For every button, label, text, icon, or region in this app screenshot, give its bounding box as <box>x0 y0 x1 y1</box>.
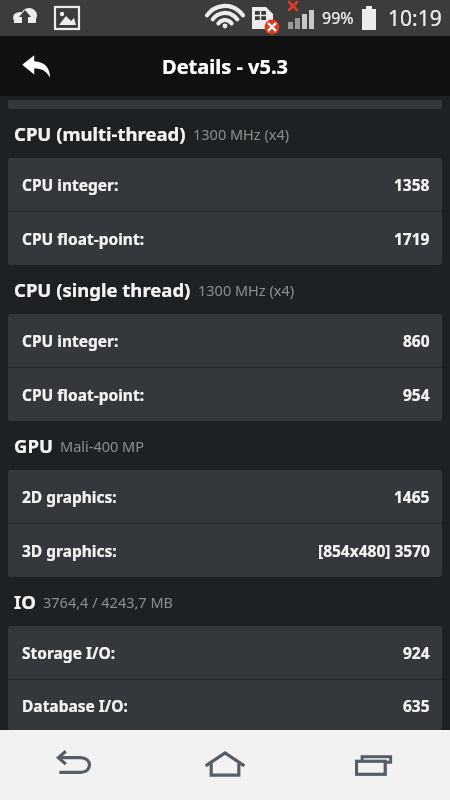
staticText: Storage I/O: <box>22 642 116 663</box>
button[interactable]: 3D graphics: <box>8 524 442 577</box>
staticText: 860 <box>403 330 430 351</box>
staticText: 3764,4 / 4243,7 MB <box>43 592 173 612</box>
button[interactable]: Database I/O: <box>8 680 442 730</box>
staticText: Details - v5.3 <box>162 53 288 80</box>
staticText: 10:19 <box>388 4 442 33</box>
staticText: 954 <box>403 384 430 405</box>
staticText: 1465 <box>394 486 430 507</box>
staticText: 3D graphics: <box>22 540 117 561</box>
staticText: CPU integer: <box>22 174 119 195</box>
staticText: 1300 MHz (x4) <box>193 124 290 144</box>
button[interactable]: Back <box>0 730 150 800</box>
button[interactable]: Home <box>150 730 300 800</box>
staticText: 635 <box>403 695 430 716</box>
staticText: CPU float-point: <box>22 228 144 249</box>
staticText: CPU (multi-thread) <box>14 121 186 146</box>
staticText: 1719 <box>394 228 430 249</box>
button[interactable]: 2D graphics: <box>8 470 442 523</box>
button[interactable]: Storage I/O: <box>8 626 442 679</box>
staticText: 1358 <box>394 174 430 195</box>
staticText: CPU (single thread) <box>14 277 191 302</box>
staticText: 924 <box>403 642 430 663</box>
button[interactable]: CPU integer: <box>8 314 442 367</box>
button[interactable]: Back <box>10 40 62 92</box>
staticText: Database I/O: <box>22 695 128 716</box>
button[interactable]: CPU float-point: <box>8 212 442 265</box>
staticText: GPU <box>14 433 53 458</box>
staticText: Mali-400 MP <box>60 436 145 456</box>
staticText: CPU float-point: <box>22 384 144 405</box>
staticText: IO <box>14 589 36 614</box>
button[interactable]: CPU integer: <box>8 158 442 211</box>
staticText: 99% <box>322 7 354 29</box>
staticText: 2D graphics: <box>22 486 117 507</box>
staticText: 1300 MHz (x4) <box>198 280 295 300</box>
button[interactable]: Recents <box>300 730 450 800</box>
button[interactable]: CPU float-point: <box>8 368 442 421</box>
staticText: CPU integer: <box>22 330 119 351</box>
staticText: [854x480] 3570 <box>318 540 430 561</box>
